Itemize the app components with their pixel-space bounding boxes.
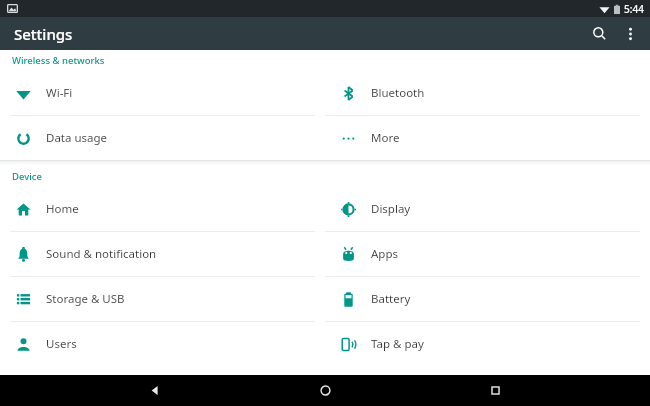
button[interactable]: Search <box>583 17 616 50</box>
button[interactable]: More options <box>616 20 644 48</box>
staticText: Bluetooth <box>371 85 425 101</box>
staticText: Users <box>46 336 77 352</box>
staticText: Settings <box>14 24 73 44</box>
button[interactable]: Back <box>139 375 170 406</box>
button[interactable]: Wi-Fi <box>0 71 325 115</box>
button[interactable]: Home <box>0 187 325 231</box>
staticText: More <box>371 130 400 146</box>
button[interactable]: More <box>325 116 650 160</box>
button[interactable]: Users <box>0 322 325 366</box>
staticText: Home <box>46 201 79 217</box>
staticText: Wi-Fi <box>46 85 73 101</box>
staticText: Sound & notification <box>46 246 157 262</box>
staticText: 5:44 <box>624 2 644 16</box>
button[interactable]: Tap & pay <box>325 322 650 366</box>
staticText: Display <box>371 201 411 217</box>
staticText: Data usage <box>46 130 108 146</box>
button[interactable]: Data usage <box>0 116 325 160</box>
staticText: Storage & USB <box>46 291 125 307</box>
staticText: Tap & pay <box>371 336 424 352</box>
staticText: Wireless & networks <box>12 54 105 67</box>
staticText: Apps <box>371 246 399 262</box>
staticText: Battery <box>371 291 411 307</box>
button[interactable]: Storage & USB <box>0 277 325 321</box>
button[interactable]: Battery <box>325 277 650 321</box>
button[interactable]: Recent apps <box>480 375 511 406</box>
button[interactable]: Sound & notification <box>0 232 325 276</box>
button[interactable]: Apps <box>325 232 650 276</box>
button[interactable]: Bluetooth <box>325 71 650 115</box>
button[interactable]: Home <box>310 375 341 406</box>
button[interactable]: Display <box>325 187 650 231</box>
staticText: Device <box>12 170 42 183</box>
